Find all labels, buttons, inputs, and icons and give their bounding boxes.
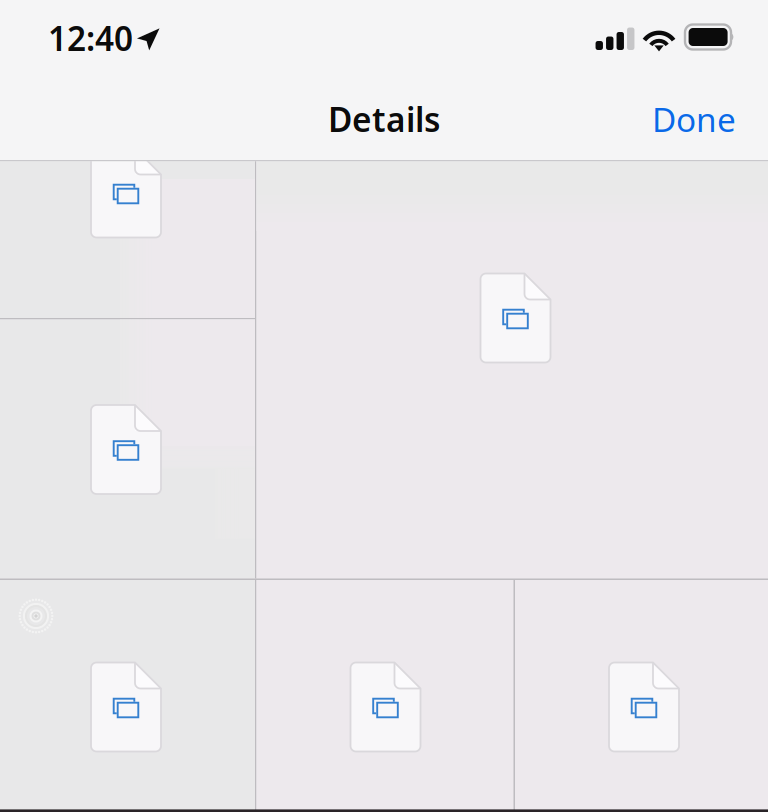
- button[interactable]: Done: [638, 85, 750, 153]
- staticText: 12:40: [48, 16, 133, 60]
- button[interactable]: Page thumbnail: [256, 161, 768, 578]
- button[interactable]: Page thumbnail: [0, 580, 255, 812]
- button[interactable]: Page thumbnail: [256, 580, 513, 812]
- staticText: Done: [652, 97, 736, 141]
- button[interactable]: Page thumbnail: [0, 319, 255, 578]
- button[interactable]: Page thumbnail: [515, 580, 768, 812]
- staticText: Details: [328, 97, 440, 141]
- button[interactable]: Page thumbnail: [0, 161, 255, 318]
